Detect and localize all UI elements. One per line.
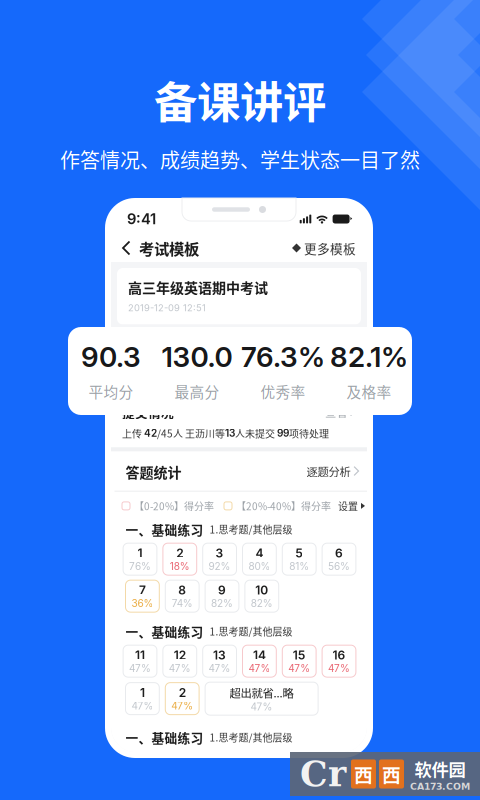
staticText: 47%	[288, 662, 310, 674]
staticText: 3	[216, 546, 224, 560]
staticText: 考试模板	[139, 237, 199, 259]
staticText: 1	[137, 546, 142, 560]
button[interactable]: 5	[282, 543, 316, 575]
button[interactable]: 考试模板	[111, 234, 205, 262]
staticText: 查看	[325, 403, 347, 420]
staticText: 130.0	[161, 340, 232, 374]
staticText: 82%	[211, 597, 233, 609]
staticText: 82%	[251, 597, 273, 609]
staticText: 2	[176, 546, 183, 560]
staticText: 【0-20%】得分率	[134, 499, 214, 513]
button[interactable]: 超出就省...略	[205, 682, 318, 715]
staticText: 5	[295, 546, 303, 560]
button[interactable]: 2	[163, 543, 197, 575]
staticText: 西	[354, 760, 373, 787]
staticText: 13	[213, 648, 226, 662]
staticText: 74%	[172, 597, 193, 609]
staticText: 9	[218, 583, 226, 597]
staticText: 47%	[328, 662, 350, 674]
staticText: 14	[253, 648, 266, 662]
button[interactable]: 14	[242, 645, 276, 677]
staticText: CA173.COM	[410, 781, 470, 792]
staticText: 6	[335, 546, 343, 560]
staticText: 2	[179, 685, 186, 700]
staticText: 76%	[129, 560, 151, 572]
button[interactable]: 11	[123, 645, 157, 677]
staticText: 8	[178, 583, 186, 597]
staticText: 提交情况	[122, 403, 174, 421]
staticText: 作答情况、成绩趋势、学生状态一目了然	[60, 145, 420, 174]
staticText: 42	[144, 427, 157, 439]
staticText: 47%	[131, 700, 153, 712]
button[interactable]: 16	[322, 645, 356, 677]
button[interactable]: 10	[245, 580, 279, 612]
staticText: 上传	[122, 426, 144, 440]
button[interactable]: 1	[125, 683, 159, 715]
staticText: 80%	[248, 560, 270, 572]
staticText: 逐题分析	[306, 463, 350, 480]
button[interactable]: 6	[322, 543, 356, 575]
staticText: 36%	[131, 597, 153, 609]
button[interactable]: 13	[203, 645, 236, 677]
staticText: 16	[332, 648, 345, 662]
button[interactable]: 2	[165, 683, 199, 715]
staticText: 15	[293, 648, 306, 662]
staticText: 13	[225, 427, 235, 439]
staticText: 设置	[338, 499, 358, 513]
staticText: 82.1%	[330, 340, 408, 374]
staticText: 76.3%	[241, 340, 325, 374]
staticText: 12	[174, 648, 186, 662]
staticText: 一、基础练习	[125, 728, 203, 746]
staticText: 更多模板	[304, 239, 356, 257]
staticText: 10	[255, 583, 268, 597]
button[interactable]: 9	[205, 580, 239, 612]
staticText: 超出就省...略	[230, 684, 294, 701]
staticText: 及格率	[346, 381, 391, 402]
staticText: 1.思考题/其他层级	[209, 624, 292, 638]
staticText: 4	[255, 546, 263, 560]
staticText: 47%	[248, 662, 270, 674]
staticText: 47%	[169, 662, 191, 674]
staticText: 一、基础练习	[125, 622, 203, 640]
staticText: 92%	[209, 560, 231, 572]
staticText: /45人	[157, 426, 183, 440]
button[interactable]: 15	[282, 645, 316, 677]
staticText: 最高分	[174, 381, 219, 402]
staticText: 47%	[171, 700, 193, 712]
button[interactable]: 3	[203, 543, 236, 575]
staticText: 47%	[129, 662, 151, 674]
staticText: 90.3	[81, 340, 141, 374]
button[interactable]: 7	[125, 580, 159, 612]
staticText: 1.思考题/其他层级	[209, 730, 292, 744]
staticText: 软件园	[414, 756, 465, 781]
staticText: 一、基础练习	[125, 520, 203, 538]
staticText: 1.思考题/其他层级	[209, 522, 292, 536]
staticText: 47%	[251, 701, 273, 713]
staticText: 9:41	[127, 210, 156, 228]
staticText: 18%	[170, 560, 190, 572]
button[interactable]: 8	[165, 580, 199, 612]
staticText: 答题统计	[125, 461, 181, 482]
staticText: 人未提交	[235, 426, 277, 440]
button[interactable]: 更多模板	[286, 234, 367, 262]
staticText: 11	[135, 648, 145, 662]
staticText: 1	[140, 685, 145, 700]
staticText: 56%	[328, 560, 350, 572]
staticText: 高三年级英语期中考试	[128, 277, 268, 297]
button[interactable]: 答题统计	[114, 451, 370, 491]
staticText: 【20%-40%】得分率	[236, 499, 331, 513]
staticText: Cr	[300, 754, 346, 794]
staticText: 西	[382, 760, 401, 787]
staticText: 47%	[209, 662, 231, 674]
staticText: 7	[139, 583, 146, 597]
staticText: 王沥川等	[183, 426, 225, 440]
button[interactable]: 12	[163, 645, 197, 677]
staticText: 优秀率	[260, 381, 305, 402]
staticText: 99	[277, 427, 289, 439]
button[interactable]: 1	[123, 543, 157, 575]
button[interactable]: 设置	[331, 499, 365, 513]
button[interactable]: 提交情况	[111, 395, 367, 447]
staticText: 备课讲评	[154, 68, 326, 131]
staticText: 2019-12-09 12:51	[128, 302, 206, 314]
button[interactable]: 4	[242, 543, 276, 575]
